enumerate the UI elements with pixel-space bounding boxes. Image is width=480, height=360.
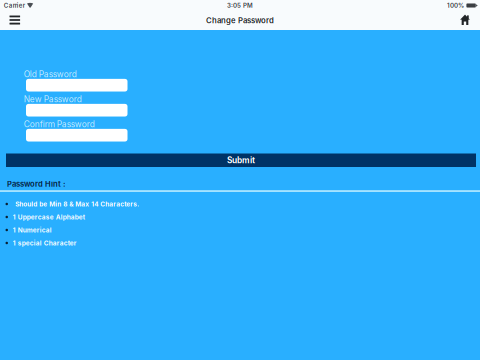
button[interactable]: Home	[452, 11, 477, 30]
staticText: 1 Numerical	[13, 226, 52, 234]
staticText: Submit	[227, 155, 255, 165]
staticText: Should be Min 8 & Max 14 Characters.	[15, 200, 139, 208]
button[interactable]: Confirm Password	[24, 129, 127, 141]
staticText: 3:05 PM	[227, 2, 253, 9]
staticText: Password Hint :	[7, 179, 66, 188]
staticText: Old Password	[24, 69, 77, 79]
staticText: Carrier	[4, 2, 25, 9]
staticText: Change Password	[206, 16, 274, 25]
staticText: 1 Uppercase Alphabet	[13, 213, 85, 221]
button[interactable]: Menu	[2, 11, 27, 30]
staticText: 100%	[447, 2, 464, 9]
staticText: 1 special Character	[13, 239, 77, 247]
button[interactable]: New Password	[24, 104, 127, 116]
staticText: Confirm Password	[24, 119, 95, 129]
button[interactable]: Submit	[6, 153, 476, 167]
button[interactable]: Old Password	[24, 79, 127, 91]
staticText: New Password	[24, 94, 82, 104]
